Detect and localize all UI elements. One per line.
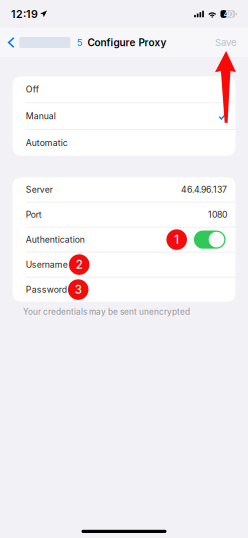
staticText: Port: [26, 209, 42, 220]
staticText: Authentication: [26, 234, 85, 245]
staticText: Password: [26, 284, 67, 295]
button[interactable]: Back: [0, 28, 83, 57]
staticText: 40: [223, 9, 233, 19]
staticText: 2: [76, 258, 83, 272]
staticText: Server: [26, 184, 53, 195]
button[interactable]: Automatic: [12, 130, 235, 156]
staticText: 1080: [208, 209, 227, 220]
staticText: 3: [75, 283, 82, 297]
staticText: Username: [26, 259, 68, 270]
staticText: 1: [174, 233, 179, 247]
button[interactable]: Manual: [12, 103, 235, 129]
staticText: 5: [77, 37, 83, 48]
staticText: Automatic: [26, 138, 68, 148]
staticText: 12:19: [11, 7, 38, 20]
button[interactable]: Save: [205, 28, 248, 57]
button[interactable]: Username: [12, 252, 235, 277]
staticText: Configure Proxy: [87, 36, 166, 49]
staticText: Manual: [26, 111, 56, 121]
staticText: 46.4.96.137: [181, 184, 227, 195]
staticText: Your credentials may be sent unencrypted: [23, 307, 190, 317]
button[interactable]: Off: [12, 76, 235, 102]
button[interactable]: Password: [12, 277, 235, 302]
staticText: Off: [26, 84, 39, 95]
staticText: Save: [215, 37, 237, 48]
